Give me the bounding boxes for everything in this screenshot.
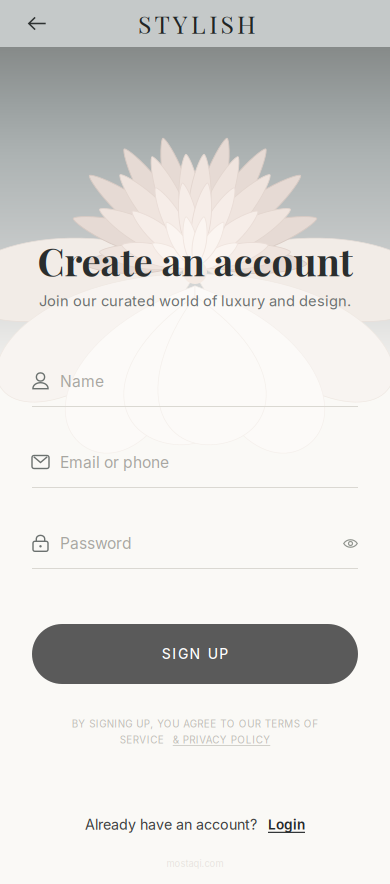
staticText: Create an account <box>37 235 352 286</box>
button[interactable]: SIGN UP <box>32 624 358 684</box>
staticText: Join our curated world of luxury and des… <box>39 292 351 310</box>
staticText: Password <box>60 534 132 553</box>
staticText: mostaqi.com <box>166 858 223 869</box>
button[interactable]: Back <box>14 0 60 47</box>
button[interactable]: Name <box>32 373 358 407</box>
button[interactable]: Email or phone <box>32 454 358 488</box>
staticText: Name <box>60 372 104 391</box>
staticText: & PRIVACY POLICY <box>173 734 270 746</box>
staticText: SERVICE <box>120 734 164 746</box>
button[interactable]: Password <box>32 535 358 569</box>
button[interactable]: & PRIVACY POLICY <box>173 734 270 746</box>
staticText: BY SIGNING UP, YOU AGREE TO OUR TERMS OF <box>72 718 318 730</box>
staticText: Email or phone <box>60 453 169 472</box>
staticText: STYLISH <box>138 7 256 40</box>
staticText: Login <box>268 816 305 833</box>
button[interactable]: Login <box>257 816 305 833</box>
staticText: Already have an account? <box>85 816 257 833</box>
staticText: SIGN UP <box>162 645 228 662</box>
